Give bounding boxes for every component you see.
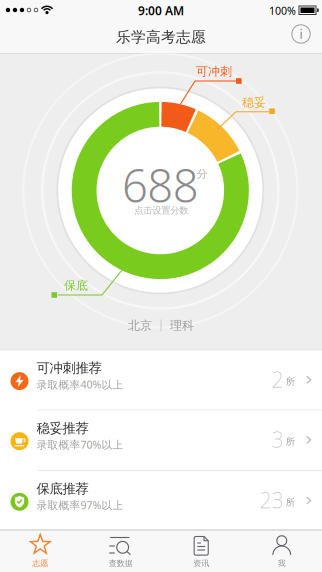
staticText: 2 xyxy=(271,365,283,393)
staticText: 23 xyxy=(259,486,283,514)
staticText: 保底推荐 xyxy=(36,481,88,497)
button[interactable]: 我 xyxy=(241,531,322,572)
staticText: 可冲刺推荐 xyxy=(36,360,101,376)
staticText: 3 xyxy=(271,425,283,453)
staticText: 志愿 xyxy=(32,558,48,568)
button[interactable]: 稳妥推荐 xyxy=(0,411,322,471)
staticText: 分 xyxy=(197,167,208,180)
staticText: 保底 xyxy=(64,278,88,293)
button[interactable]: 北京 xyxy=(128,313,194,337)
staticText: 688 xyxy=(122,155,199,215)
button[interactable]: 可冲刺推荐 xyxy=(0,350,322,411)
staticText: i xyxy=(299,26,302,42)
staticText: 查数据 xyxy=(109,558,133,568)
button[interactable]: 688 xyxy=(96,145,226,235)
staticText: 录取概率70%以上 xyxy=(36,437,123,452)
staticText: 乐学高考志愿 xyxy=(116,28,206,46)
staticText: 北京 xyxy=(128,318,152,333)
staticText: 稳妥推荐 xyxy=(36,420,88,436)
button[interactable]: i xyxy=(291,24,311,44)
staticText: 100% xyxy=(269,3,296,18)
button[interactable]: 资讯 xyxy=(161,531,241,572)
staticText: 所 xyxy=(286,497,295,508)
button[interactable]: 保底推荐 xyxy=(0,471,322,529)
staticText: 理科 xyxy=(170,318,194,333)
staticText: 所 xyxy=(286,436,295,447)
staticText: 我 xyxy=(278,558,286,568)
staticText: 可冲刺 xyxy=(196,64,232,79)
staticText: 所 xyxy=(286,376,295,387)
staticText: 9:00 AM xyxy=(138,2,184,18)
button[interactable]: 志愿 xyxy=(0,531,80,572)
staticText: 点击设置分数 xyxy=(134,205,188,216)
staticText: 录取概率40%以上 xyxy=(36,377,123,391)
staticText: 资讯 xyxy=(193,558,209,568)
staticText: 稳妥 xyxy=(242,95,266,110)
staticText: 录取概率97%以上 xyxy=(36,498,123,512)
button[interactable]: 查数据 xyxy=(80,531,161,572)
